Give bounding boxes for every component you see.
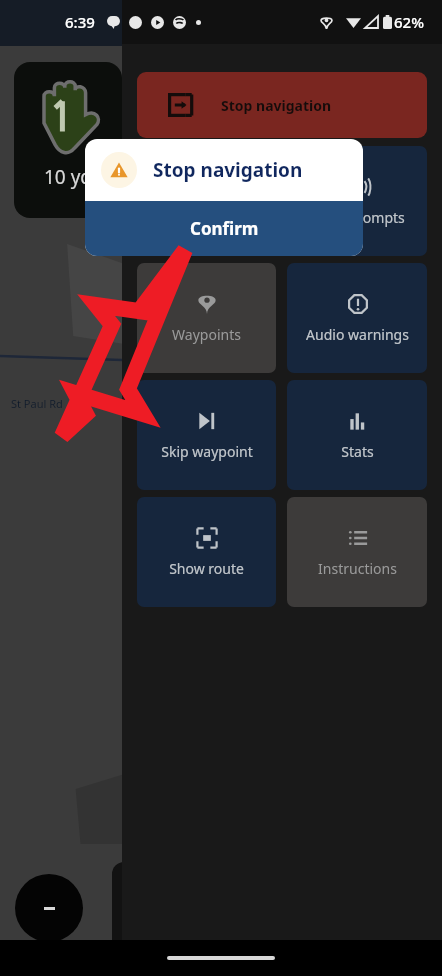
staticText: 62% — [394, 12, 424, 32]
button[interactable]: Confirm — [85, 201, 363, 256]
button[interactable]: Show route — [137, 497, 276, 607]
button[interactable]: Audio warnings — [287, 263, 427, 373]
staticText: St Paul Rd — [11, 396, 63, 411]
staticText: Pause — [187, 208, 227, 227]
staticText: Skip waypoint — [161, 442, 253, 461]
staticText: Stop navigation — [221, 96, 332, 115]
button[interactable]: Instructions — [287, 497, 427, 607]
button[interactable]: Voice prompts — [287, 146, 427, 256]
staticText: Voice prompts — [310, 208, 405, 227]
staticText: Audio warnings — [306, 325, 409, 344]
staticText: 6:39 — [65, 12, 95, 32]
staticText: 10 yd — [44, 164, 93, 190]
staticText: Stats — [341, 442, 374, 461]
button[interactable]: Zoom out — [15, 874, 83, 942]
button[interactable]: Stop navigation — [137, 72, 427, 138]
button[interactable]: Skip waypoint — [137, 380, 276, 490]
button[interactable]: Stats — [287, 380, 427, 490]
staticText: Confirm — [190, 217, 259, 240]
staticText: Stop navigation — [153, 157, 303, 183]
staticText: Show route — [169, 559, 244, 578]
staticText: Waypoints — [172, 325, 241, 344]
staticText: Instructions — [318, 559, 397, 578]
button[interactable]: Pause — [137, 146, 276, 256]
button[interactable]: Waypoints — [137, 263, 276, 373]
